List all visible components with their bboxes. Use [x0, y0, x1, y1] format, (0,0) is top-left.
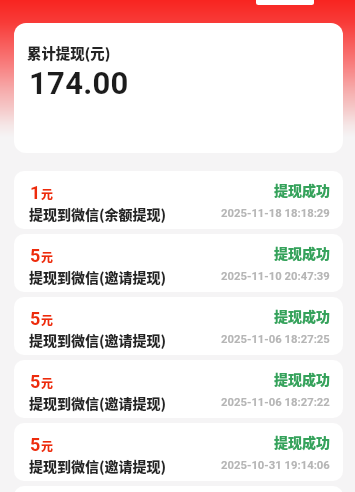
staticText: 累计提现(元): [27, 42, 111, 63]
staticText: 5: [30, 245, 41, 266]
staticText: 5: [30, 308, 41, 329]
staticText: 5: [30, 434, 41, 455]
staticText: 1: [30, 182, 41, 203]
staticText: 提现成功: [274, 432, 330, 452]
staticText: 元: [41, 248, 54, 265]
staticText: 提现成功: [274, 243, 330, 263]
staticText: 174.00: [29, 65, 129, 101]
staticText: 2025-11-06 18:27:25: [221, 333, 330, 346]
staticText: 提现到微信(邀请提现): [29, 330, 167, 350]
staticText: 元: [41, 374, 54, 391]
button[interactable]: 5: [14, 234, 343, 292]
staticText: 提现到微信(邀请提现): [29, 456, 167, 476]
button[interactable]: 1: [14, 171, 343, 229]
staticText: 提现成功: [274, 306, 330, 326]
button[interactable]: 5: [14, 360, 343, 418]
staticText: 元: [41, 185, 54, 202]
staticText: 提现成功: [274, 369, 330, 389]
button[interactable]: 5: [14, 423, 343, 481]
staticText: 元: [41, 311, 54, 328]
staticText: 提现成功: [274, 180, 330, 200]
staticText: 2025-11-18 18:18:29: [221, 207, 330, 220]
staticText: 2025-10-31 19:14:06: [221, 459, 330, 472]
button[interactable]: 5: [14, 297, 343, 355]
staticText: 提现到微信(邀请提现): [29, 267, 167, 287]
staticText: 元: [41, 437, 54, 454]
staticText: 5: [30, 371, 41, 392]
staticText: 提现到微信(邀请提现): [29, 393, 167, 413]
staticText: 提现到微信(余额提现): [29, 204, 167, 224]
staticText: 2025-11-10 20:47:39: [221, 270, 330, 283]
staticText: 2025-11-06 18:27:22: [221, 396, 330, 409]
